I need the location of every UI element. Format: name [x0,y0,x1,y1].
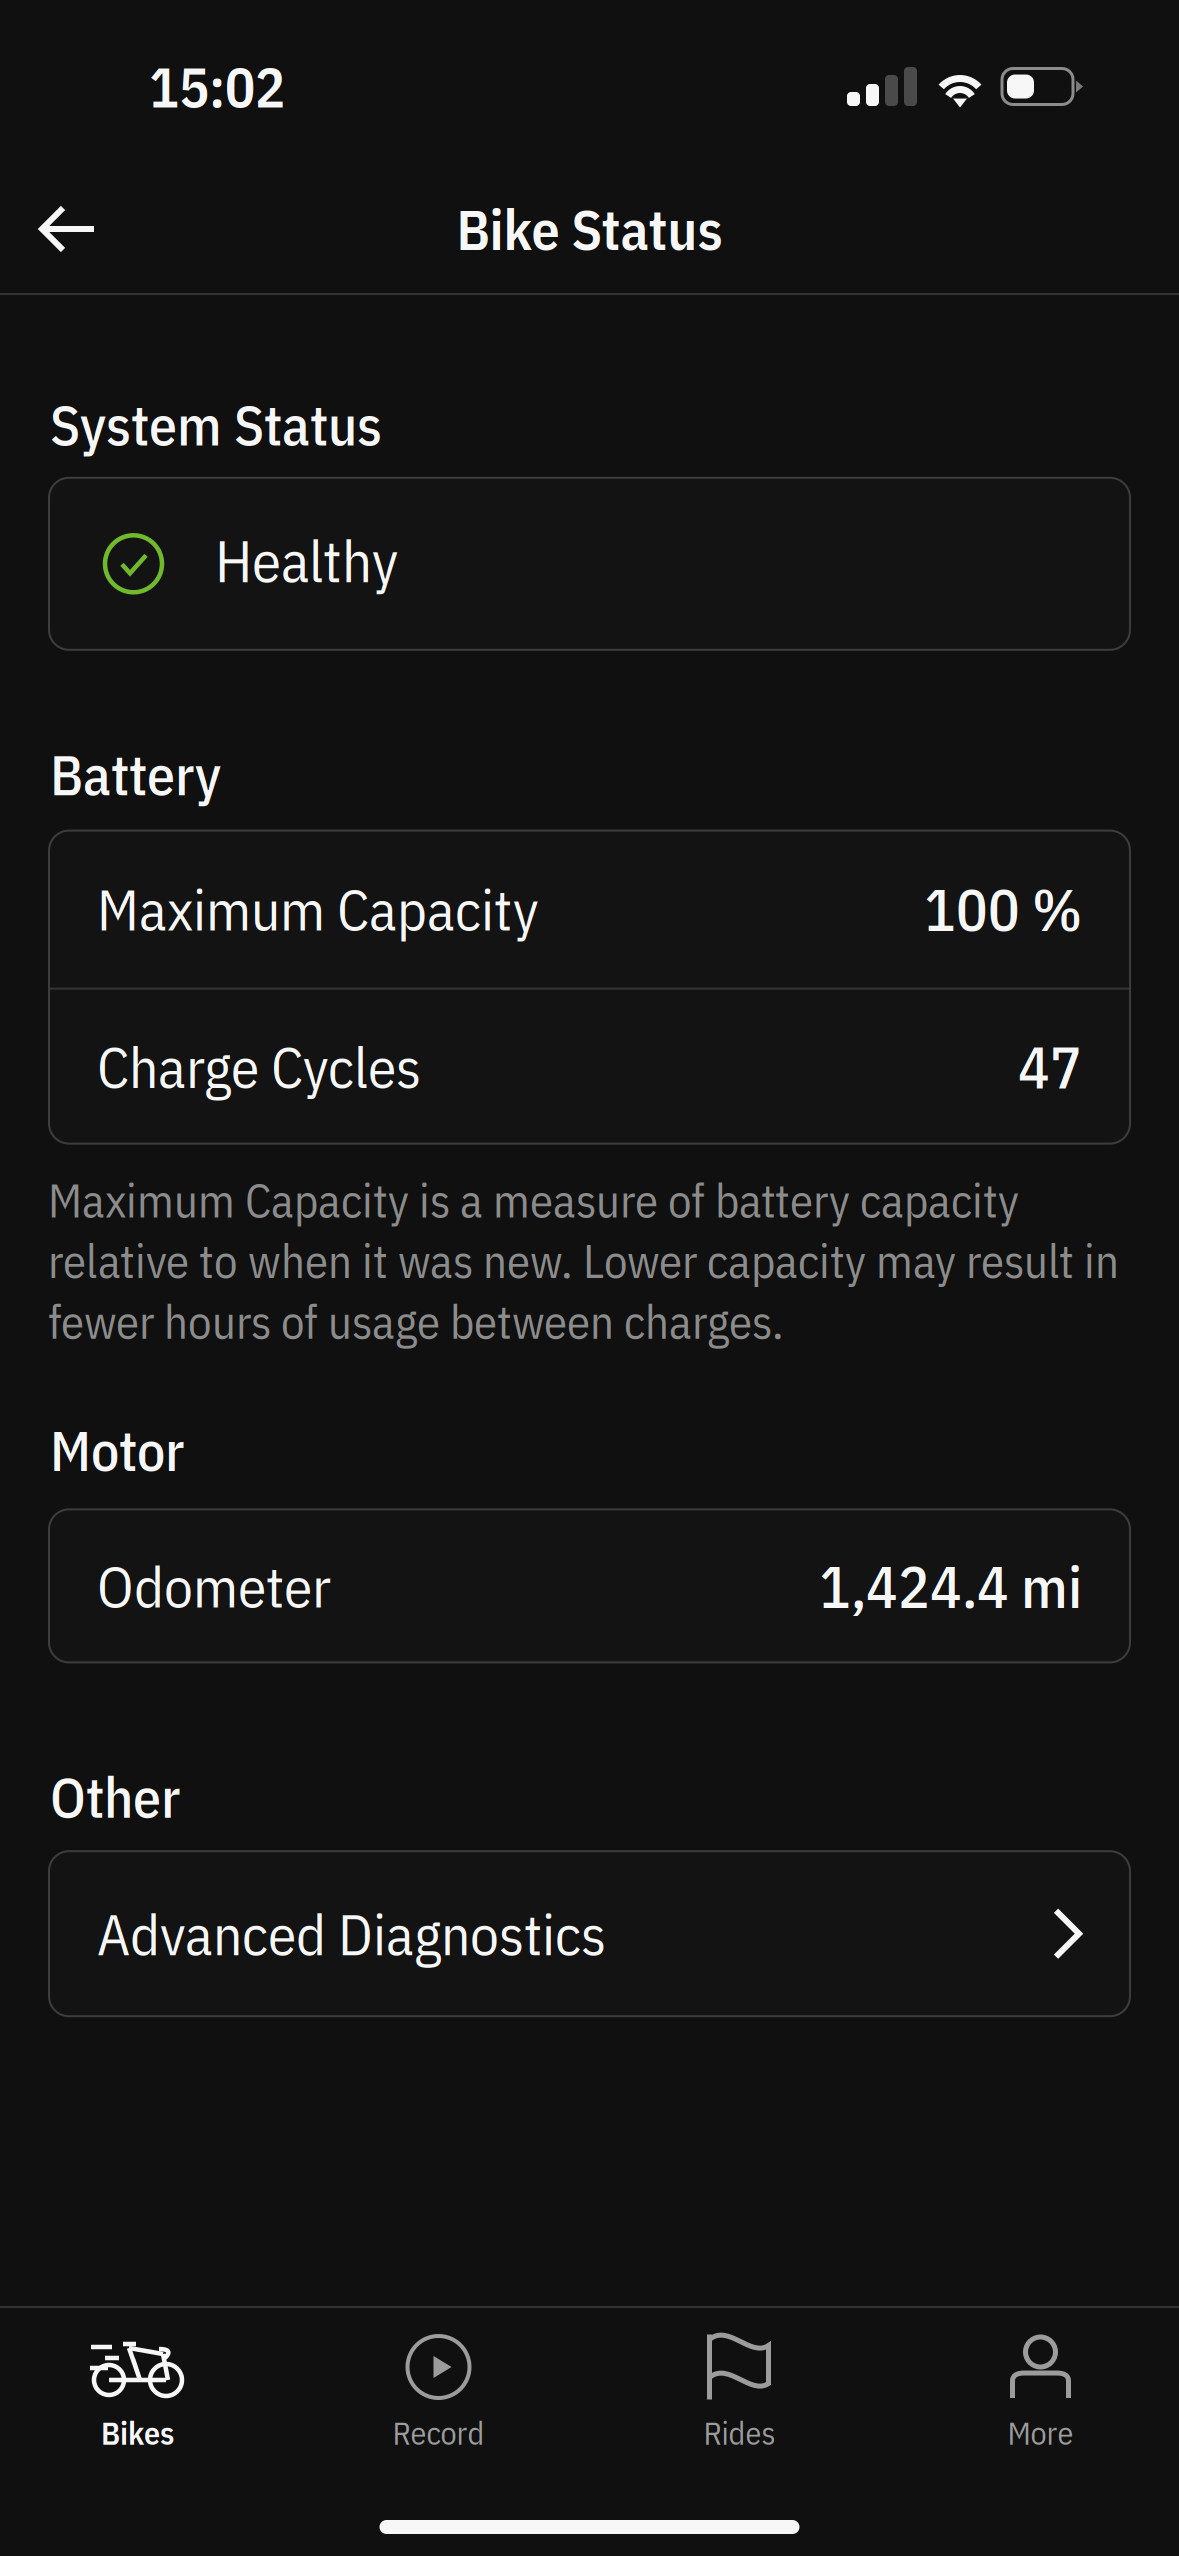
staticText: 47 [1018,1028,1082,1105]
staticText: Record [392,2412,484,2454]
staticText: Odometer [97,1549,331,1623]
staticText: System Status [50,388,382,461]
staticText: Battery [50,738,221,811]
staticText: 1,424.4 mi [819,1548,1082,1624]
staticText: Bike Status [456,193,722,265]
staticText: More [1007,2412,1073,2454]
staticText: 15:02 [149,50,285,123]
staticText: Charge Cycles [97,1029,421,1104]
staticText: Rides [703,2412,775,2454]
button[interactable]: Back [0,175,132,283]
button[interactable]: Record [288,2308,589,2497]
staticText: Advanced Diagnostics [97,1896,606,1971]
staticText: 100 % [924,871,1082,947]
staticText: Other [50,1760,180,1833]
staticText: Motor [50,1414,184,1486]
staticText: Bikes [101,2412,174,2454]
button[interactable]: Rides [589,2308,890,2497]
button[interactable]: More [890,2308,1179,2497]
button[interactable]: Advanced Diagnostics [0,1851,1179,2016]
staticText: Healthy [215,522,398,598]
staticText: Maximum Capacity is a measure of battery… [48,1170,1119,1352]
staticText: Maximum Capacity [97,872,539,946]
button[interactable]: Bikes [0,2308,288,2497]
